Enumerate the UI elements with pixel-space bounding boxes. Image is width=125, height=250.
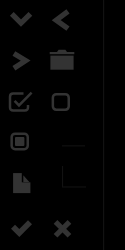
button[interactable]: Forward (13, 52, 30, 70)
button[interactable]: Expand more (11, 12, 30, 28)
button[interactable]: Checked (10, 90, 34, 112)
button[interactable]: File (13, 173, 31, 194)
button[interactable]: Delete (49, 49, 76, 71)
button[interactable]: Close (53, 219, 73, 239)
button[interactable]: Unchecked (51, 92, 71, 112)
button[interactable]: Done (11, 220, 34, 238)
button[interactable]: Back (53, 11, 70, 29)
button[interactable]: Indeterminate (10, 132, 31, 152)
